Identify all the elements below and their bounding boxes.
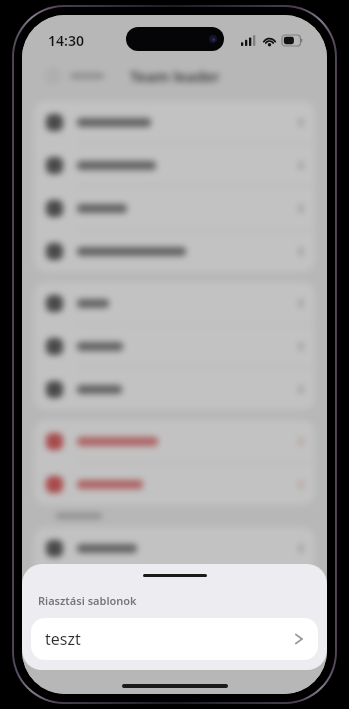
staticText: Riasztási sablonok	[38, 593, 137, 608]
button[interactable]: teszt	[31, 618, 318, 660]
staticText: 14:30	[48, 31, 84, 50]
staticText: Team leader	[130, 66, 220, 86]
staticText: teszt	[45, 628, 81, 650]
